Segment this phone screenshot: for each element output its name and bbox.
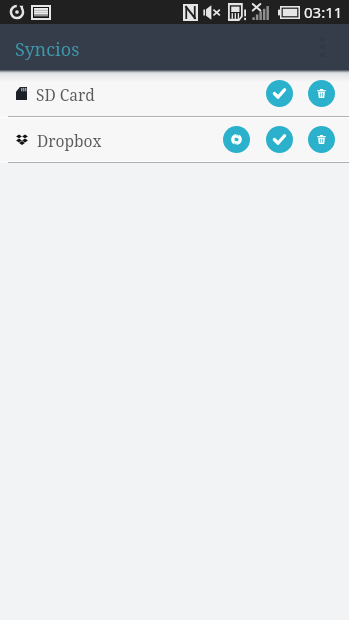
staticText: Syncios: [15, 37, 80, 62]
button[interactable]: Sync: [223, 126, 250, 153]
button[interactable]: Select: [266, 126, 293, 153]
button[interactable]: Delete: [308, 126, 335, 153]
staticText: 03:11: [304, 2, 343, 22]
button[interactable]: Select: [266, 80, 293, 107]
button[interactable]: SD Card: [0, 70, 349, 116]
staticText: SD Card: [36, 84, 95, 105]
button[interactable]: Delete: [308, 80, 335, 107]
staticText: Dropbox: [37, 130, 102, 151]
button[interactable]: Dropbox: [0, 118, 349, 161]
